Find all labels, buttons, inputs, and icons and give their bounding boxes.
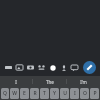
button[interactable]: I: [70, 88, 79, 99]
staticText: R: [33, 90, 37, 97]
button[interactable]: O: [80, 88, 89, 99]
button[interactable]: Stickers: [36, 62, 47, 73]
staticText: W: [12, 90, 17, 97]
staticText: I: [15, 79, 17, 85]
button[interactable]: T: [40, 88, 49, 99]
button[interactable]: GIF: [3, 62, 14, 73]
staticText: I'm: [80, 79, 87, 85]
button[interactable]: Emoji: [47, 62, 58, 73]
staticText: The: [46, 79, 54, 85]
staticText: U: [63, 90, 67, 97]
button[interactable]: Voice input: [58, 62, 69, 73]
staticText: E: [23, 90, 26, 97]
button[interactable]: I: [0, 76, 32, 87]
staticText: T: [43, 90, 46, 97]
button[interactable]: Y: [50, 88, 59, 99]
staticText: I: [74, 90, 76, 97]
button[interactable]: The: [33, 76, 66, 87]
staticText: Q: [3, 90, 7, 97]
button[interactable]: Q: [1, 88, 9, 99]
staticText: O: [83, 90, 87, 97]
button[interactable]: Camera: [25, 62, 36, 73]
button[interactable]: W: [10, 88, 19, 99]
staticText: P: [93, 90, 97, 97]
button[interactable]: Chat sticker: [69, 62, 80, 73]
button[interactable]: R: [30, 88, 39, 99]
staticText: Y: [53, 90, 56, 97]
button[interactable]: Photos: [14, 62, 25, 73]
button[interactable]: I'm: [67, 76, 100, 87]
button[interactable]: E: [20, 88, 29, 99]
button[interactable]: P: [90, 88, 99, 99]
button[interactable]: Compose: [83, 61, 96, 74]
button[interactable]: U: [60, 88, 69, 99]
